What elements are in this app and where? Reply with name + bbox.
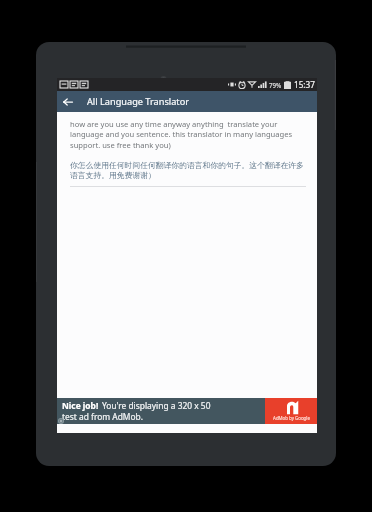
staticText: All Language Translator (87, 95, 190, 108)
button[interactable]: Back (57, 91, 78, 112)
staticText: 79% (269, 81, 282, 89)
button[interactable]: AdMob test advertisement (57, 398, 317, 424)
staticText: 你怎么使用任何时间任何翻译你的语言和你的句子。这个翻译在许多语言支持。用免费谢谢… (70, 160, 306, 181)
staticText: AdMob by Google (273, 415, 310, 421)
staticText: test ad from AdMob. (62, 411, 143, 422)
staticText: how are you use any time anyway anything… (70, 119, 306, 151)
staticText: Nice job! (62, 400, 99, 411)
staticText: 15:37 (294, 79, 315, 90)
staticText: You're displaying a 320 x 50 (102, 400, 211, 411)
